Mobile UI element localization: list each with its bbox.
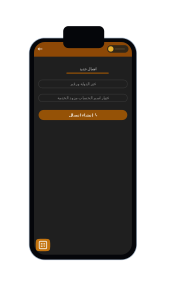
button[interactable]: Forms xyxy=(36,239,50,251)
staticText: اتصال جديد xyxy=(79,66,96,71)
button[interactable]: Back xyxy=(34,42,46,56)
staticText: اختر الدولة ورقم xyxy=(70,82,96,86)
staticText: إنشاء اتصال xyxy=(68,113,92,117)
button[interactable]: اختر الدولة ورقم xyxy=(39,80,127,88)
button[interactable]: إنشاء اتصال xyxy=(39,110,127,120)
staticText: اختيار اسم الحساب مزود الخدمة xyxy=(57,96,109,100)
button[interactable]: اختيار اسم الحساب مزود الخدمة xyxy=(39,94,127,102)
button[interactable]: Account xyxy=(107,45,128,53)
